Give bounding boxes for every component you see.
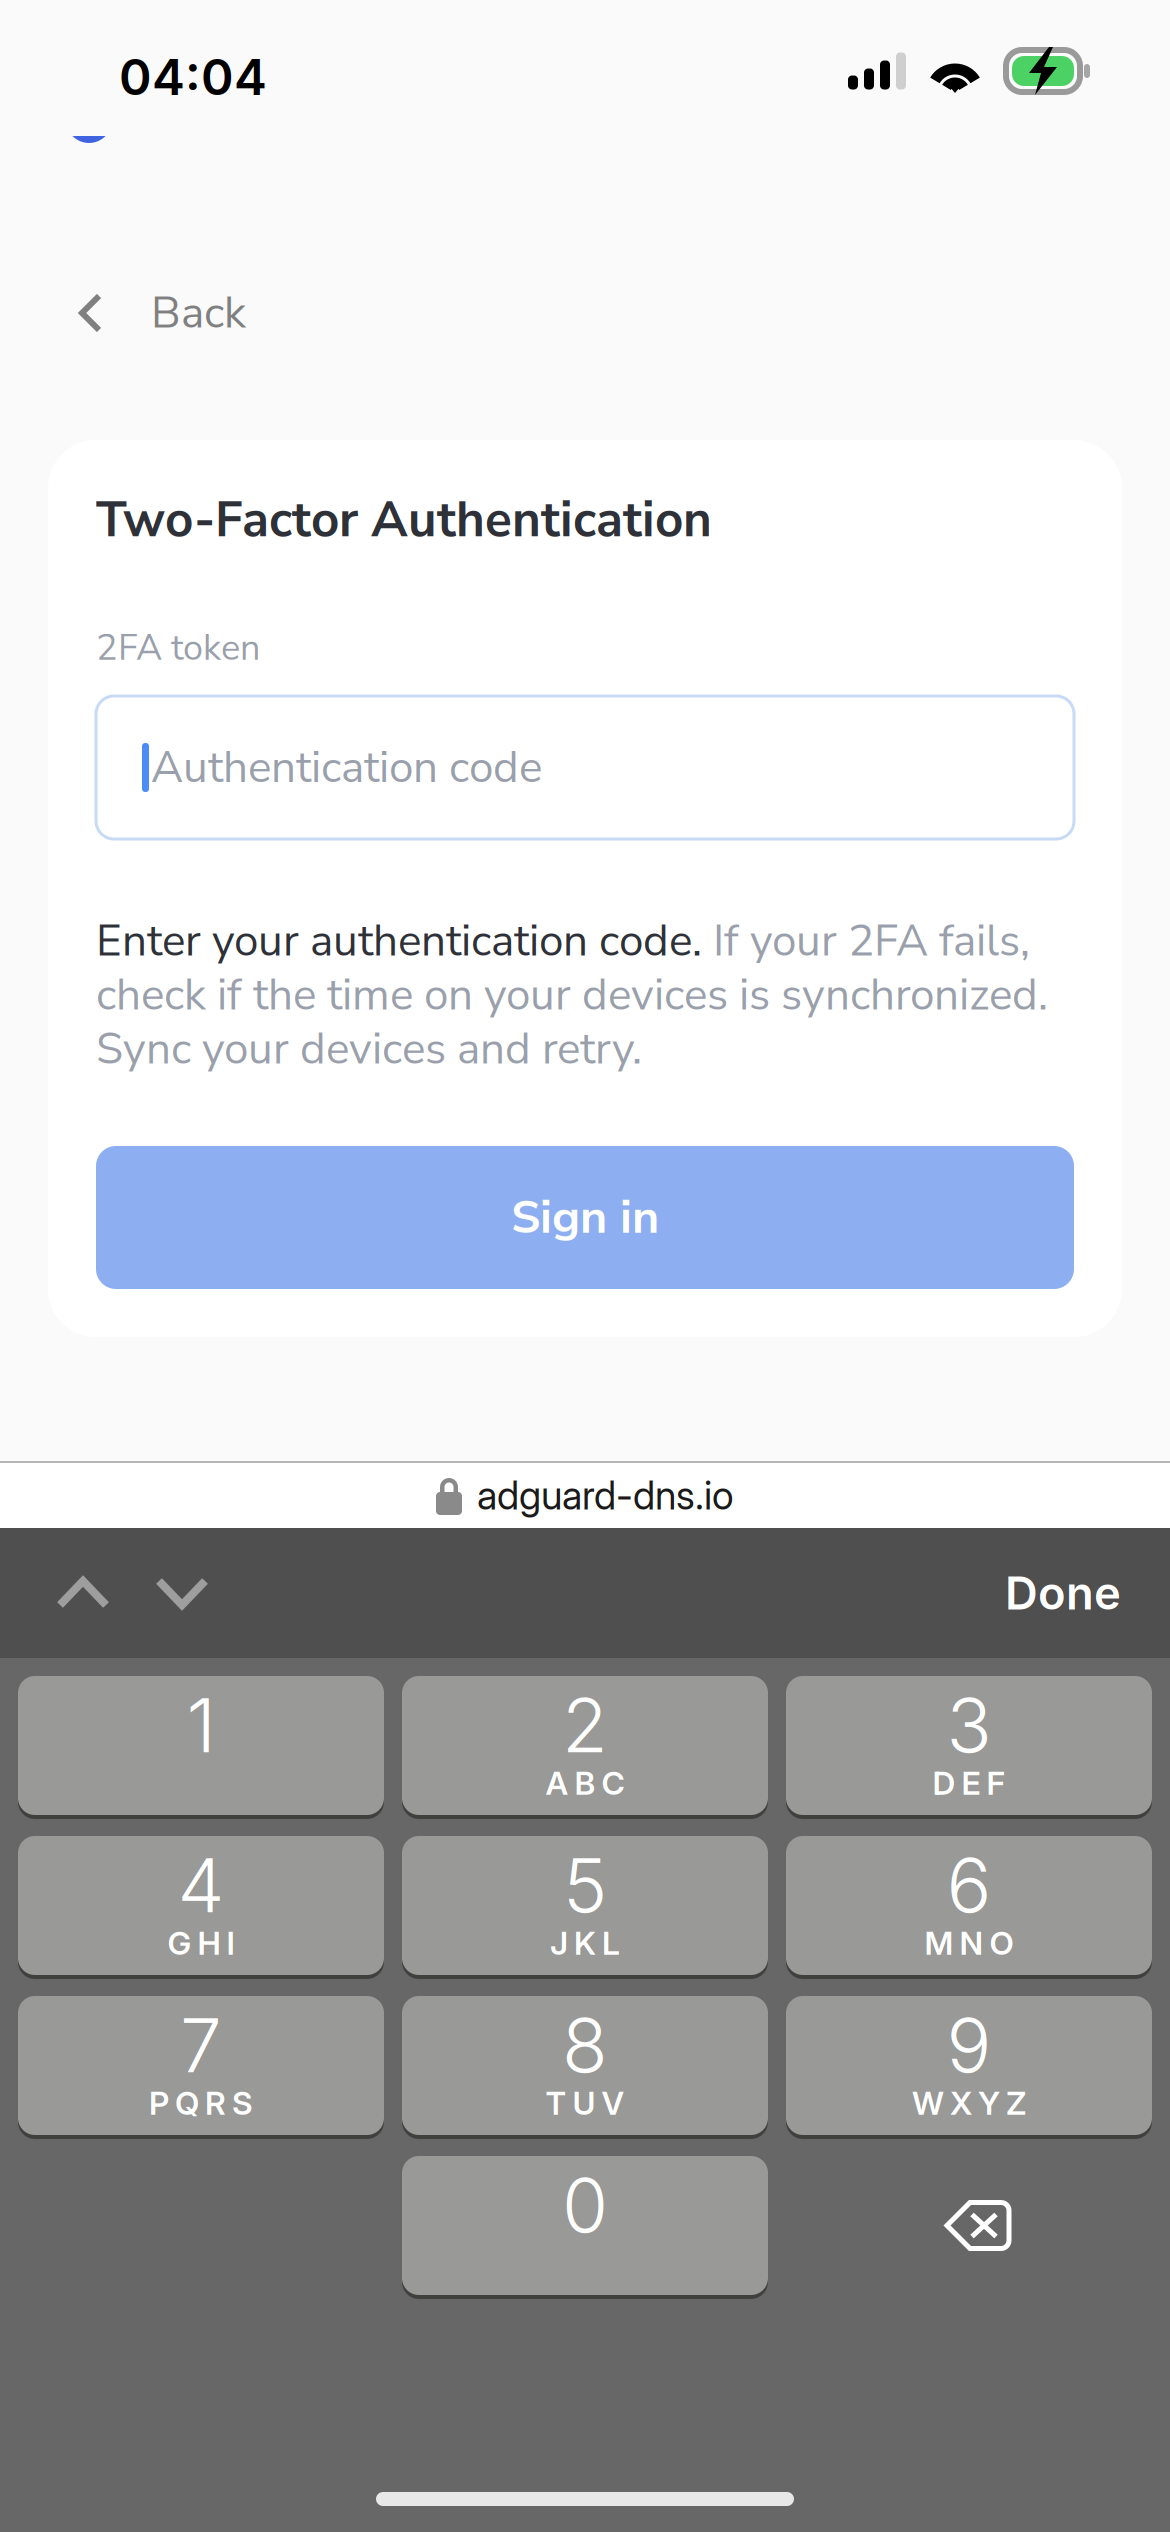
button[interactable]: 4 [18, 1836, 384, 1975]
staticText: 9 [946, 2000, 991, 2090]
staticText: Two-Factor Authentication [96, 486, 712, 554]
button[interactable]: Back [0, 271, 1170, 355]
button[interactable]: Delete [786, 2156, 1152, 2295]
staticText: If your 2FA fails, [702, 911, 1030, 971]
staticText: GHI [167, 1924, 234, 1962]
button[interactable]: Done [1005, 1528, 1121, 1658]
button[interactable]: Sign in [96, 1146, 1074, 1289]
button[interactable]: 2 [402, 1676, 768, 1815]
button[interactable]: adguard-dns.io address [0, 1461, 1170, 1528]
staticText: Enter your authentication code. [96, 911, 702, 971]
staticText: check if the time on your devices is syn… [96, 965, 1048, 1025]
staticText: Sync your devices and retry. [96, 1019, 642, 1079]
staticText: Authentication code [151, 737, 542, 797]
staticText: 8 [562, 2000, 608, 2090]
button[interactable]: 5 [402, 1836, 768, 1975]
button[interactable]: 0 [402, 2156, 768, 2295]
staticText: adguard-dns.io [477, 1472, 734, 1519]
button[interactable]: Previous field [56, 1528, 110, 1658]
staticText: 0 [562, 2160, 608, 2250]
staticText: 5 [563, 1840, 607, 1930]
button[interactable]: 7 [18, 1996, 384, 2135]
staticText: 6 [946, 1840, 991, 1930]
button[interactable]: 1 [18, 1676, 384, 1815]
staticText: 4 [177, 1840, 224, 1930]
staticText: Sign in [511, 1186, 659, 1249]
staticText: DEF [932, 1764, 1005, 1802]
staticText: ABC [545, 1764, 624, 1802]
button[interactable]: 8 [402, 1996, 768, 2135]
staticText: Back [151, 283, 246, 343]
button[interactable]: 3 [786, 1676, 1152, 1815]
staticText: 2 [562, 1680, 608, 1770]
staticText: 2FA token [96, 623, 260, 672]
staticText: 1 [186, 1680, 215, 1770]
staticText: 7 [180, 2000, 222, 2090]
staticText: TUV [545, 2084, 624, 2122]
button[interactable]: 9 [786, 1996, 1152, 2135]
staticText: 04:04 [119, 47, 267, 107]
staticText: MNO [924, 1924, 1013, 1962]
button[interactable]: Next field [155, 1528, 209, 1658]
button[interactable]: 6 [786, 1836, 1152, 1975]
staticText: Done [1005, 1566, 1121, 1620]
staticText: PQRS [149, 2084, 253, 2122]
staticText: WXYZ [912, 2084, 1026, 2122]
staticText: JKL [550, 1924, 620, 1962]
staticText: 3 [946, 1680, 991, 1770]
